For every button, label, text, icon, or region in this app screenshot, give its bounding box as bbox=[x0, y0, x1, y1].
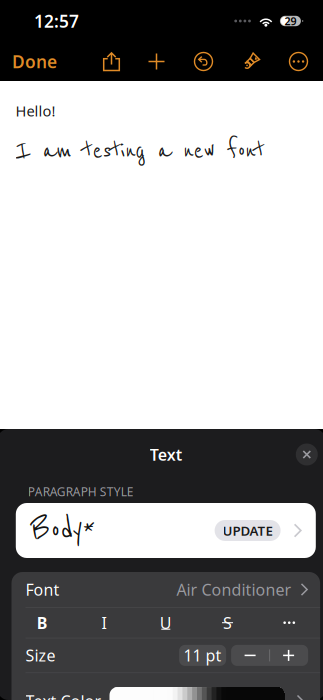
staticText: Text bbox=[150, 444, 182, 465]
staticText: PARAGRAPH STYLE bbox=[28, 483, 134, 499]
staticText: I am testing a new font bbox=[15, 136, 264, 166]
button[interactable]: Increase size bbox=[269, 645, 308, 666]
staticText: B bbox=[37, 612, 48, 633]
staticText: Body* bbox=[31, 513, 95, 548]
button[interactable]: Close bbox=[296, 443, 318, 465]
staticText: UPDATE bbox=[223, 522, 273, 539]
staticText: Font bbox=[25, 579, 59, 600]
staticText: 29 bbox=[284, 14, 296, 28]
button[interactable]: More bbox=[279, 42, 317, 80]
button[interactable]: Font bbox=[11, 572, 320, 607]
button[interactable]: Done bbox=[0, 42, 65, 80]
button[interactable]: Decrease size bbox=[231, 645, 269, 666]
button[interactable]: Body* bbox=[16, 503, 316, 558]
staticText: Text Color bbox=[25, 690, 101, 700]
staticText: U bbox=[160, 612, 172, 633]
button[interactable]: Markup bbox=[231, 42, 269, 80]
staticText: 11 pt bbox=[184, 645, 222, 666]
staticText: 12:57 bbox=[34, 9, 79, 32]
staticText: S bbox=[223, 612, 232, 633]
button[interactable]: S bbox=[197, 608, 258, 638]
button[interactable]: Add bbox=[137, 42, 175, 80]
staticText: Done bbox=[12, 50, 57, 73]
button[interactable]: B bbox=[11, 608, 73, 638]
staticText: I bbox=[102, 612, 107, 633]
staticText: Size bbox=[25, 645, 55, 666]
button[interactable]: 11 pt bbox=[179, 645, 226, 666]
button[interactable]: More text styles bbox=[258, 608, 320, 638]
button[interactable]: Undo bbox=[184, 42, 222, 80]
staticText: Hello! bbox=[15, 101, 55, 120]
button[interactable]: U bbox=[135, 608, 197, 638]
button[interactable]: I bbox=[73, 608, 135, 638]
staticText: Air Conditioner bbox=[176, 579, 291, 600]
button[interactable]: Share bbox=[92, 42, 130, 80]
